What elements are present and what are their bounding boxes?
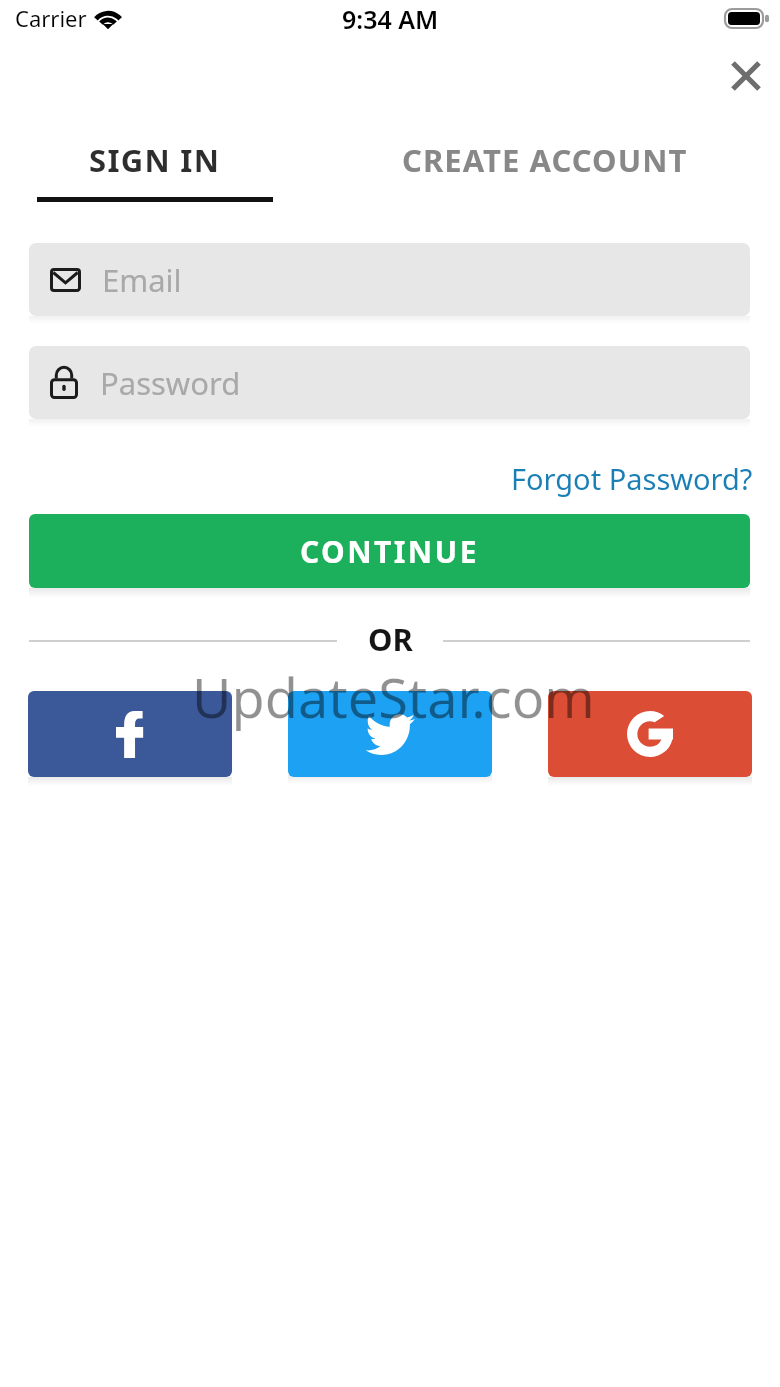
staticText: Carrier [15,3,87,33]
staticText: Password [100,362,241,404]
staticText: Email [102,259,182,301]
staticText: CONTINUE [300,531,479,572]
staticText: 9:34 AM [342,2,439,36]
button[interactable]: Sign in with Google [548,691,752,777]
staticText: OR [368,618,413,660]
staticText: CREATE ACCOUNT [402,139,688,181]
button[interactable]: CONTINUE [29,514,750,588]
button[interactable]: Password [29,346,750,419]
button[interactable]: Email [29,243,750,316]
button[interactable]: Sign in with Facebook [28,691,232,777]
staticText: Forgot Password? [511,459,753,498]
button[interactable]: CREATE ACCOUNT [395,125,695,197]
button[interactable]: Sign in with Twitter [288,691,492,777]
button[interactable]: Close [718,49,770,101]
staticText: SIGN IN [89,139,221,181]
button[interactable]: SIGN IN [37,125,273,202]
button[interactable]: Forgot Password? [507,454,756,502]
staticText: UpdateStar.com [192,660,595,734]
